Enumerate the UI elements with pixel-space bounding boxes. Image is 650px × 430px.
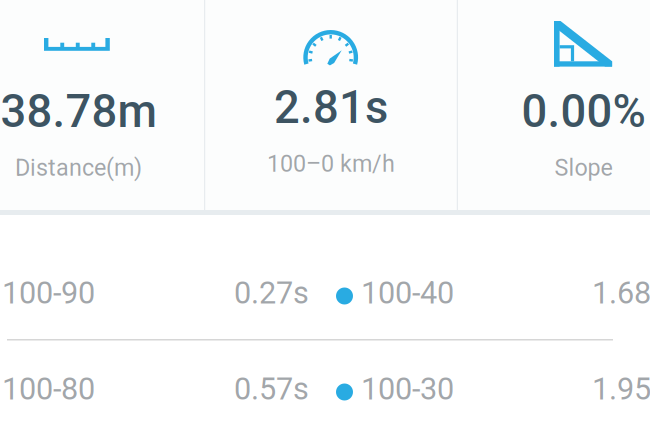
staticText: 1.68 <box>592 275 650 311</box>
staticText: Slope <box>554 154 612 181</box>
staticText: 1.95 <box>592 371 650 407</box>
button[interactable]: 2.81s <box>205 0 456 211</box>
button[interactable]: 38.78m <box>0 0 204 211</box>
staticText: 2.81s <box>274 81 388 134</box>
staticText: 100-30 <box>361 371 454 407</box>
staticText: 0.00% <box>521 85 645 138</box>
staticText: Distance(m) <box>15 154 142 181</box>
staticText: 100–0 km/h <box>267 150 395 177</box>
staticText: 100-40 <box>361 275 454 311</box>
button[interactable]: 0.00% <box>458 0 650 211</box>
button[interactable]: 100-80 <box>0 343 650 430</box>
button[interactable]: 100-90 <box>0 247 650 339</box>
staticText: 38.78m <box>0 85 156 138</box>
staticText: 100-80 <box>2 371 95 407</box>
staticText: 0.57s <box>234 371 309 407</box>
staticText: 100-90 <box>2 275 95 311</box>
staticText: 0.27s <box>234 275 309 311</box>
